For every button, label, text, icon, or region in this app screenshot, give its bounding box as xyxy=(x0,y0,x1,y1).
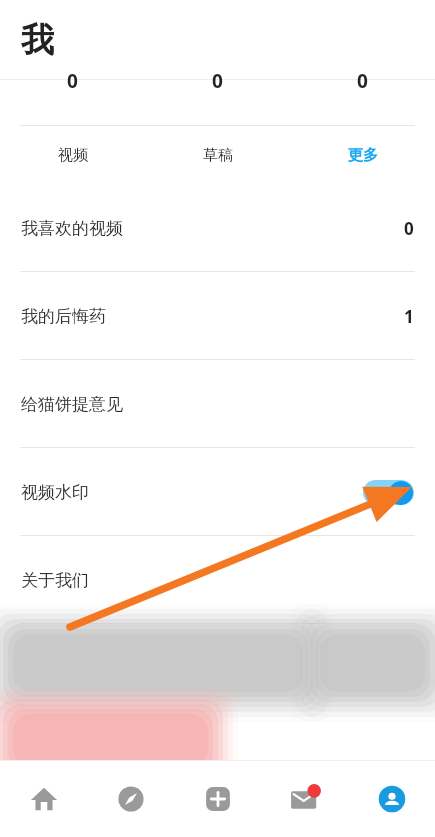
button[interactable]: Home xyxy=(0,760,87,837)
staticText: 视频 xyxy=(58,146,88,165)
button[interactable]: 视频水印 xyxy=(0,448,435,536)
staticText: 0 xyxy=(67,68,78,94)
button[interactable]: 视频水印 开关 xyxy=(363,480,414,505)
button[interactable]: 关于我们 xyxy=(0,536,435,624)
staticText: 我的后悔药 xyxy=(21,306,106,327)
staticText: 关于我们 xyxy=(21,570,89,591)
button[interactable]: 视频 xyxy=(0,136,145,175)
button[interactable]: 我的后悔药 xyxy=(0,272,435,360)
button[interactable]: 草稿 xyxy=(145,136,290,175)
staticText: 0 xyxy=(357,68,368,94)
staticText: 更多 xyxy=(348,146,378,165)
staticText: 我 xyxy=(21,19,54,61)
button[interactable]: Profile xyxy=(348,760,435,837)
button[interactable]: 更多 xyxy=(290,136,435,175)
staticText: 给猫饼提意见 xyxy=(21,394,123,415)
button[interactable]: Create xyxy=(174,760,261,837)
button[interactable]: Discover xyxy=(87,760,174,837)
staticText: 视频水印 xyxy=(21,482,89,503)
button[interactable]: 我喜欢的视频 xyxy=(0,184,435,272)
staticText: 1 xyxy=(404,305,414,328)
staticText: 我喜欢的视频 xyxy=(21,218,123,239)
button[interactable]: Messages xyxy=(261,760,348,837)
staticText: 0 xyxy=(212,68,223,94)
staticText: 草稿 xyxy=(203,146,233,165)
button[interactable]: 给猫饼提意见 xyxy=(0,360,435,448)
staticText: 0 xyxy=(404,217,414,240)
